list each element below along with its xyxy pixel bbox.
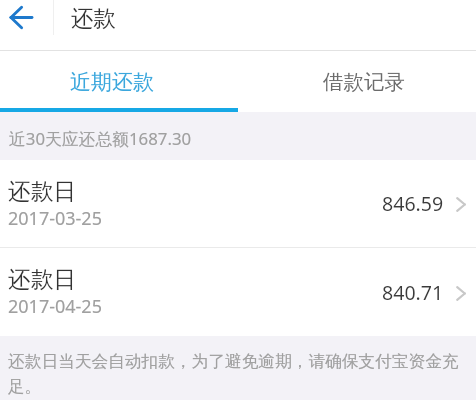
staticText: 还款日: [8, 265, 77, 294]
button[interactable]: Back: [0, 0, 52, 44]
staticText: 还款日: [8, 177, 77, 206]
staticText: 还款: [71, 4, 116, 32]
staticText: 840.71: [382, 279, 444, 306]
staticText: 2017-04-25: [8, 294, 102, 319]
button[interactable]: 还款日: [0, 160, 476, 247]
button[interactable]: 还款日: [0, 248, 476, 336]
button[interactable]: 近期还款: [0, 51, 238, 112]
button[interactable]: 借款记录: [238, 51, 476, 112]
staticText: 近30天应还总额1687.30: [9, 127, 192, 150]
staticText: 846.59: [382, 190, 444, 217]
staticText: 借款记录: [323, 69, 405, 95]
staticText: 2017-03-25: [8, 206, 102, 231]
staticText: 近期还款: [70, 69, 154, 95]
staticText: 还款日当天会自动扣款，为了避免逾期，请确保支付宝资金充足。: [8, 351, 470, 397]
